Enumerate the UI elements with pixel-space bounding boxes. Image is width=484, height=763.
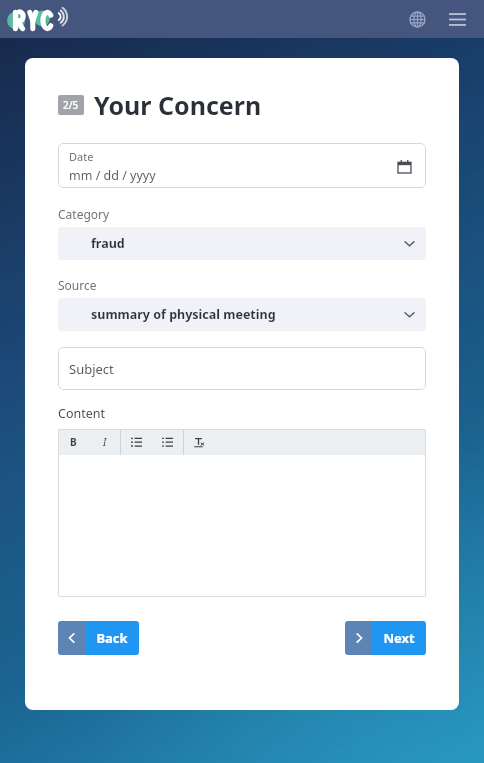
- staticText: Next: [383, 629, 415, 647]
- staticText: Back: [96, 629, 128, 647]
- staticText: Source: [58, 277, 97, 293]
- staticText: 2/5: [63, 98, 79, 112]
- button[interactable]: fraud: [58, 227, 426, 260]
- button[interactable]: Clear formatting: [184, 429, 215, 455]
- staticText: fraud: [91, 235, 125, 252]
- other: Pick date: [394, 156, 414, 176]
- staticText: Content: [58, 405, 105, 422]
- button[interactable]: Numbered list: [152, 429, 183, 455]
- staticText: mm / dd / yyyy: [69, 167, 156, 184]
- staticText: Category: [58, 206, 110, 222]
- staticText: summary of physical meeting: [91, 306, 276, 323]
- button[interactable]: Next: [345, 621, 426, 655]
- button[interactable]: summary of physical meeting: [58, 298, 426, 331]
- button[interactable]: [58, 455, 426, 597]
- staticText: Your Concern: [94, 88, 262, 122]
- button[interactable]: Subject: [58, 347, 426, 390]
- button[interactable]: Italic: [89, 429, 120, 455]
- button[interactable]: Bold: [58, 429, 89, 455]
- button[interactable]: Back: [58, 621, 139, 655]
- button[interactable]: Date: [58, 143, 426, 188]
- staticText: I: [103, 435, 107, 449]
- button[interactable]: Bulleted list: [121, 429, 152, 455]
- staticText: Subject: [69, 360, 114, 378]
- button[interactable]: Menu: [442, 4, 472, 34]
- button[interactable]: RYC home: [8, 4, 70, 34]
- staticText: Date: [69, 149, 94, 164]
- staticText: B: [70, 435, 77, 449]
- button[interactable]: Language: [402, 4, 432, 34]
